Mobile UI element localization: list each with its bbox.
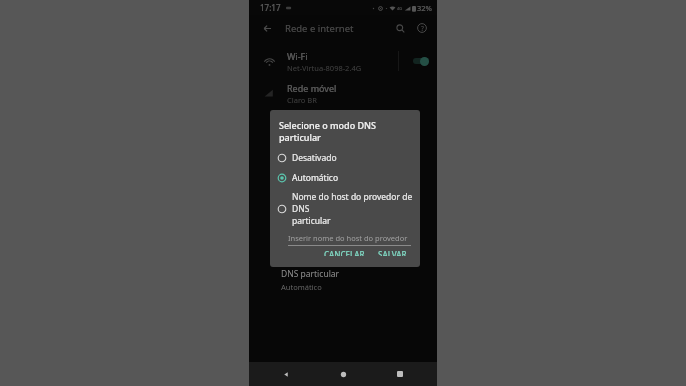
staticText: Wi-Fi <box>287 50 308 62</box>
staticText: CANCELAR <box>324 249 365 256</box>
staticText: Desativado <box>292 152 337 164</box>
button[interactable]: Back <box>259 20 275 36</box>
button[interactable]: Automático <box>270 170 420 186</box>
button[interactable]: Wi-Fi toggle <box>409 54 429 68</box>
staticText: particular <box>292 215 331 227</box>
button[interactable]: Help <box>414 20 430 36</box>
staticText: 32% <box>417 3 432 13</box>
staticText: DNS particular <box>281 268 340 280</box>
staticText: Rede móvel <box>287 82 337 94</box>
button[interactable]: Search <box>392 20 408 36</box>
button[interactable]: Desativado <box>270 150 420 166</box>
staticText: 4G <box>397 6 403 11</box>
button[interactable]: Recent apps <box>391 365 409 383</box>
staticText: ? <box>421 24 424 33</box>
staticText: Selecione o modo DNS particular <box>279 119 420 143</box>
staticText: Net-Virtua-8098-2.4G <box>287 63 362 73</box>
staticText: 17:17 <box>260 2 281 13</box>
button[interactable]: Wi-Fi <box>249 45 437 77</box>
button[interactable]: Back <box>277 365 295 383</box>
staticText: Automático <box>292 172 339 184</box>
staticText: Rede e internet <box>285 22 354 35</box>
button[interactable]: CANCELAR <box>319 246 370 259</box>
staticText: Nome do host do provedor de DNS <box>292 191 420 215</box>
staticText: SALVAR <box>378 249 407 256</box>
staticText: Automático <box>281 282 322 292</box>
button[interactable]: Nome do host do provedor de DNS <box>270 189 420 229</box>
button[interactable]: SALVAR <box>373 246 412 259</box>
staticText: Inserir nome do host do provedor D <box>288 233 411 243</box>
button[interactable]: Rede móvel <box>249 77 437 109</box>
button[interactable]: Home <box>334 365 352 383</box>
staticText: Claro BR <box>287 95 317 105</box>
